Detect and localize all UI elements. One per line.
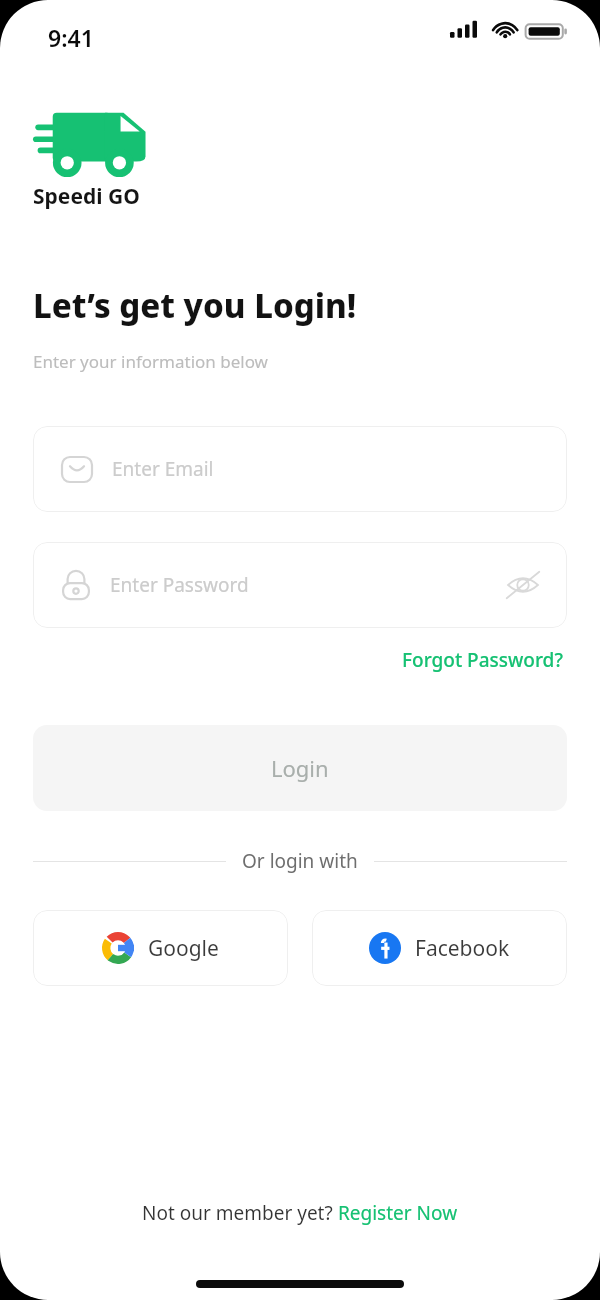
button[interactable]: Forgot Password? xyxy=(398,643,567,677)
button[interactable]: Google xyxy=(33,910,288,986)
staticText: Or login with xyxy=(242,848,358,874)
staticText: Enter Password xyxy=(110,572,249,598)
button[interactable]: Login xyxy=(33,725,567,811)
staticText: Enter Email xyxy=(112,456,214,482)
button[interactable]: Facebook xyxy=(312,910,567,986)
staticText: Facebook xyxy=(415,934,510,963)
button[interactable]: Enter Email xyxy=(33,426,567,512)
staticText: Google xyxy=(148,934,219,963)
staticText: Register Now xyxy=(338,1200,458,1226)
button[interactable]: Register Now xyxy=(338,1200,458,1226)
button[interactable]: Show password xyxy=(499,561,547,609)
staticText: Login xyxy=(271,753,329,783)
button[interactable]: Enter Password xyxy=(33,542,567,628)
staticText: Not our member yet? xyxy=(142,1200,338,1226)
staticText: Forgot Password? xyxy=(402,647,563,673)
staticText: Speedi GO xyxy=(33,182,140,211)
staticText: Let’s get you Login! xyxy=(33,283,357,328)
staticText: Enter your information below xyxy=(33,350,268,373)
staticText: 9:41 xyxy=(48,22,94,53)
